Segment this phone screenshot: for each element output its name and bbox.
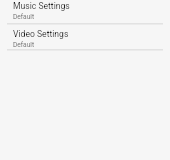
staticText: Default: [13, 41, 35, 49]
staticText: Video Settings: [13, 29, 69, 39]
staticText: Music Settings: [13, 1, 70, 11]
button[interactable]: Video Settings: [0, 25, 170, 49]
button[interactable]: Music Settings: [0, 0, 170, 23]
staticText: Default: [13, 13, 35, 21]
